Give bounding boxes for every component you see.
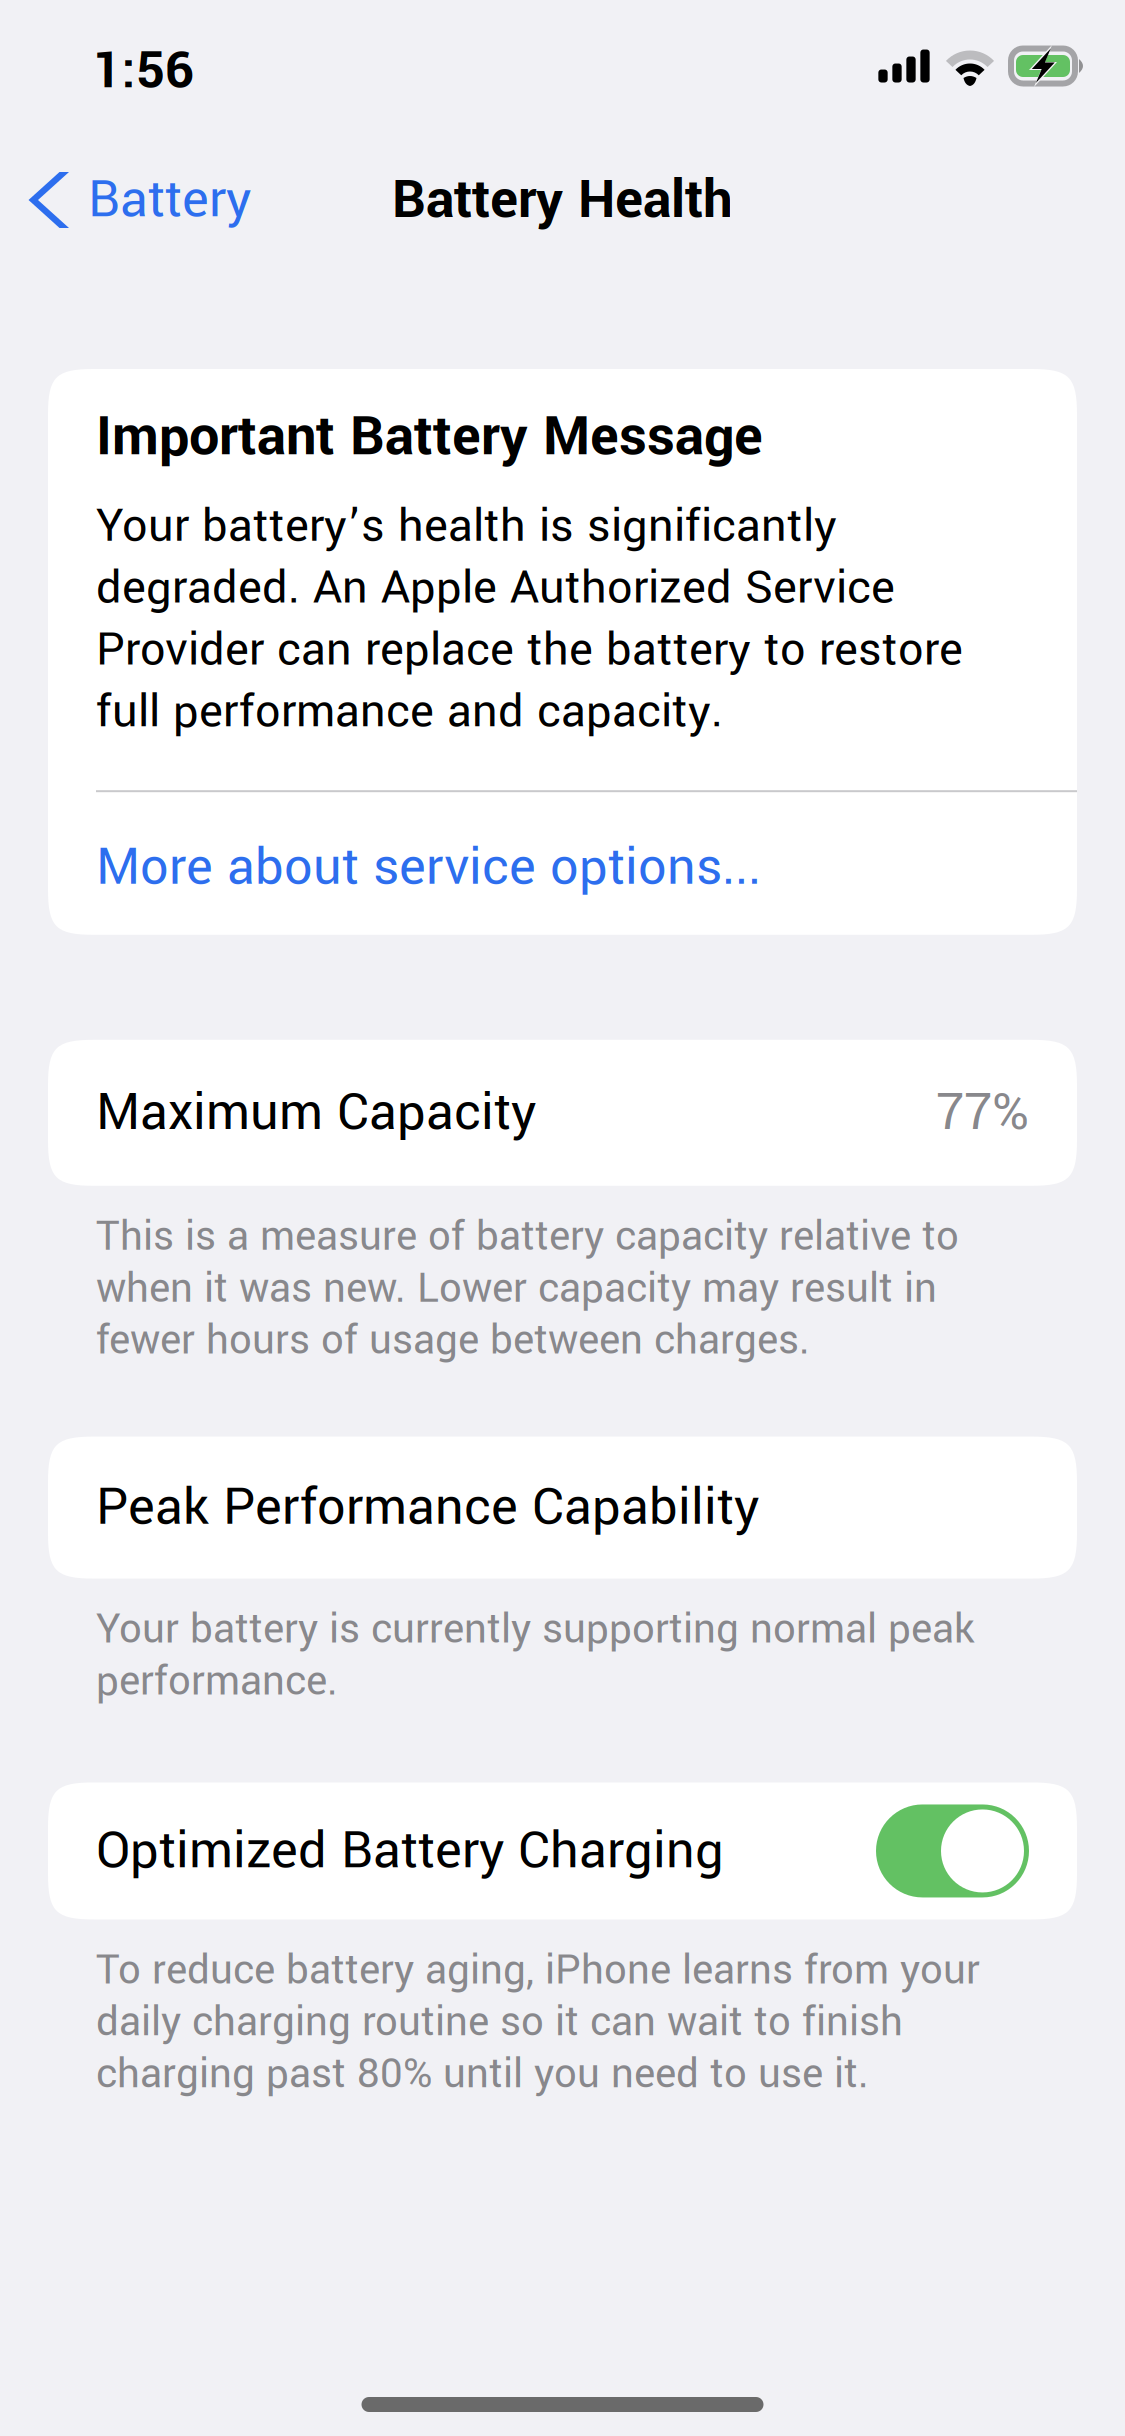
button[interactable]: Battery [0, 137, 275, 263]
staticText: Battery [88, 164, 251, 236]
staticText: Maximum Capacity [96, 1076, 536, 1149]
staticText: Peak Performance Capability [96, 1471, 759, 1544]
button[interactable]: More about service options... [48, 792, 1077, 935]
staticText: More about service options... [96, 831, 761, 904]
staticText: Your battery’s health is significantly d… [96, 494, 963, 744]
staticText: Important Battery Message [96, 398, 763, 476]
staticText: Your battery is currently supporting nor… [96, 1601, 975, 1710]
staticText: Battery Health [392, 162, 733, 238]
staticText: This is a measure of battery capacity re… [96, 1208, 959, 1370]
button[interactable]: Optimized Battery Charging [48, 1782, 1077, 1919]
staticText: 1:56 [93, 35, 194, 107]
staticText: Optimized Battery Charging [96, 1815, 724, 1887]
staticText: 77% [936, 1076, 1029, 1149]
staticText: To reduce battery aging, iPhone learns f… [96, 1941, 980, 2103]
